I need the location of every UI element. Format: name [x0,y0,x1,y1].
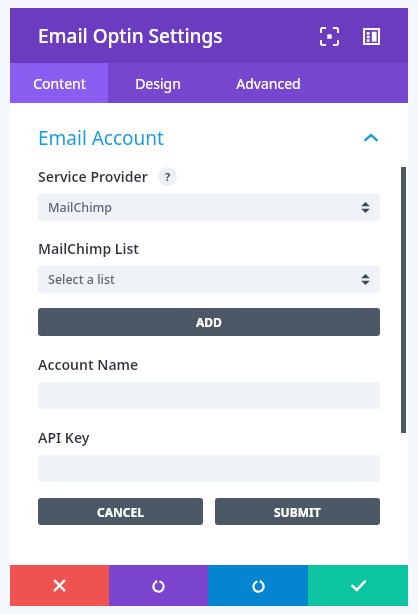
staticText: MailChimp List [38,239,139,258]
staticText: SUBMIT [274,504,321,520]
staticText: Advanced [236,74,301,93]
button[interactable]: Advanced [208,63,328,103]
staticText: ADD [196,314,222,330]
button[interactable]: MailChimp [38,194,380,221]
button[interactable]: Undo [109,565,208,606]
button[interactable]: Email Account [38,121,380,155]
staticText: Email Optin Settings [38,23,223,49]
button[interactable]: Select a list [38,266,380,293]
button[interactable]: SUBMIT [215,498,380,525]
staticText: API Key [38,428,90,447]
staticText: Content [33,74,86,93]
button[interactable]: Redo [208,565,308,606]
button[interactable]: ADD [38,308,380,336]
staticText: MailChimp [48,199,113,216]
staticText: ? [165,169,171,184]
button[interactable]: Cancel [10,565,109,606]
button[interactable]: Save [308,565,408,606]
button[interactable]: Help [158,167,177,186]
button[interactable]: Fullscreen [314,21,344,51]
staticText: Email Account [38,125,164,151]
staticText: Select a list [48,271,115,288]
button[interactable]: Layout [356,21,386,51]
staticText: Service Provider [38,167,148,186]
staticText: Design [135,74,181,93]
button[interactable]: Design [108,63,208,103]
staticText: CANCEL [97,504,144,520]
staticText: Account Name [38,355,139,374]
button[interactable]: CANCEL [38,498,203,525]
button[interactable]: Content [10,63,108,103]
